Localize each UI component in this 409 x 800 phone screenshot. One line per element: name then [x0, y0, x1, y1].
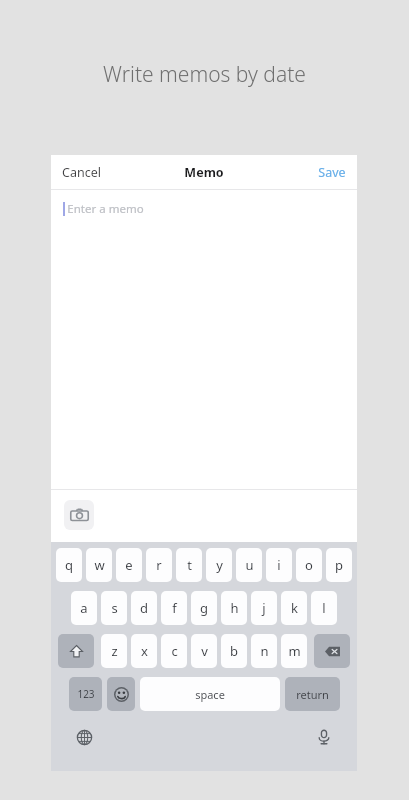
button[interactable]: v [191, 634, 217, 668]
staticText: t [187, 556, 192, 574]
button[interactable]: r [146, 548, 172, 582]
staticText: Memo [184, 164, 224, 181]
button[interactable]: y [206, 548, 232, 582]
button[interactable]: s [101, 591, 127, 625]
staticText: i [277, 556, 281, 574]
button[interactable]: j [251, 591, 277, 625]
staticText: e [125, 556, 133, 574]
staticText: s [111, 599, 118, 617]
button[interactable]: k [281, 591, 307, 625]
staticText: c [171, 642, 178, 660]
button[interactable]: Cancel [51, 155, 112, 189]
button[interactable]: Save [307, 155, 357, 189]
staticText: Cancel [62, 164, 101, 181]
staticText: w [94, 556, 105, 574]
button[interactable]: o [296, 548, 322, 582]
button[interactable]: p [326, 548, 352, 582]
button[interactable]: w [86, 548, 112, 582]
button[interactable]: Change keyboard [71, 724, 97, 750]
staticText: h [230, 599, 239, 617]
staticText: f [172, 599, 177, 617]
button[interactable]: n [251, 634, 277, 668]
button[interactable]: Enter a memo [51, 190, 357, 489]
staticText: m [288, 642, 301, 660]
staticText: Enter a memo [67, 201, 144, 217]
button[interactable]: e [116, 548, 142, 582]
staticText: b [230, 642, 238, 660]
button[interactable]: x [131, 634, 157, 668]
staticText: g [200, 599, 208, 617]
staticText: y [216, 556, 223, 574]
button[interactable]: Backspace [314, 634, 350, 668]
button[interactable]: 123 [69, 677, 102, 711]
staticText: r [156, 556, 162, 574]
staticText: q [65, 556, 73, 574]
staticText: d [140, 599, 148, 617]
button[interactable]: space [140, 677, 280, 711]
button[interactable]: z [101, 634, 127, 668]
button[interactable]: b [221, 634, 247, 668]
button[interactable]: Emoji [107, 677, 135, 711]
button[interactable]: Dictate [311, 724, 337, 750]
staticText: k [291, 599, 298, 617]
staticText: 123 [77, 687, 95, 701]
staticText: x [141, 642, 148, 660]
button[interactable]: u [236, 548, 262, 582]
staticText: n [260, 642, 269, 660]
button[interactable]: h [221, 591, 247, 625]
button[interactable]: l [311, 591, 337, 625]
staticText: p [335, 556, 343, 574]
staticText: z [111, 642, 118, 660]
button[interactable]: t [176, 548, 202, 582]
button[interactable]: c [161, 634, 187, 668]
staticText: j [262, 599, 266, 617]
button[interactable]: d [131, 591, 157, 625]
button[interactable]: Shift [58, 634, 94, 668]
button[interactable]: Attach photo [64, 500, 94, 530]
button[interactable]: g [191, 591, 217, 625]
staticText: Save [318, 164, 346, 181]
staticText: a [80, 599, 88, 617]
button[interactable]: a [71, 591, 97, 625]
staticText: u [245, 556, 254, 574]
staticText: Write memos by date [103, 60, 306, 89]
button[interactable]: f [161, 591, 187, 625]
staticText: o [305, 556, 313, 574]
button[interactable]: return [285, 677, 340, 711]
button[interactable]: q [56, 548, 82, 582]
button[interactable]: m [281, 634, 307, 668]
staticText: return [296, 687, 329, 702]
staticText: space [195, 687, 225, 702]
staticText: l [322, 599, 326, 617]
button[interactable]: i [266, 548, 292, 582]
staticText: v [201, 642, 208, 660]
